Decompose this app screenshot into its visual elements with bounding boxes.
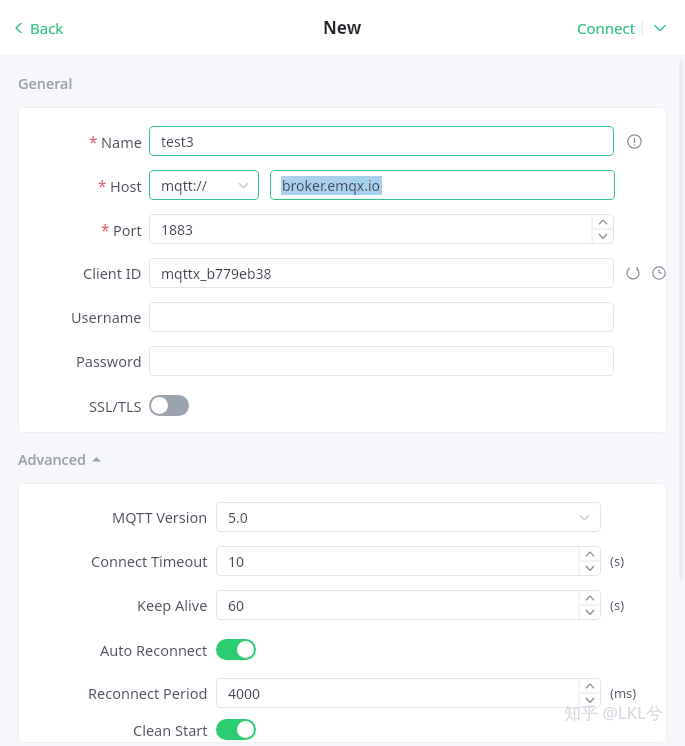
button[interactable]: SSL/TLS <box>149 395 189 416</box>
staticText: (ms) <box>610 684 637 702</box>
staticText: * <box>89 131 98 152</box>
staticText: Host <box>110 176 142 196</box>
button[interactable]: Increase or decrease value <box>579 590 601 620</box>
staticText: mqttx_b779eb38 <box>161 264 272 283</box>
staticText: (s) <box>610 552 625 570</box>
staticText: Name <box>101 132 142 152</box>
button[interactable]: mqtt:// <box>149 170 259 200</box>
button[interactable]: More options <box>643 11 677 45</box>
button[interactable] <box>149 302 614 332</box>
button[interactable]: Client ID history <box>650 264 667 282</box>
button[interactable]: test3 <box>149 126 614 156</box>
button[interactable]: Regenerate client ID <box>624 264 642 282</box>
staticText: Keep Alive <box>137 595 208 615</box>
staticText: * <box>98 175 107 196</box>
button[interactable] <box>149 346 614 376</box>
button[interactable]: 5.0 <box>216 502 601 532</box>
staticText: Reconnect Period <box>88 683 208 703</box>
staticText: MQTT Version <box>112 507 208 527</box>
button[interactable]: mqttx_b779eb38 <box>149 258 614 288</box>
button[interactable]: 4000 <box>216 678 601 708</box>
button[interactable]: 60 <box>216 590 601 620</box>
staticText: 10 <box>228 552 245 571</box>
staticText: (s) <box>610 596 625 614</box>
staticText: 60 <box>228 596 245 615</box>
staticText: test3 <box>161 132 194 151</box>
button[interactable]: Advanced <box>18 449 101 469</box>
button[interactable]: Increase or decrease value <box>592 214 614 244</box>
staticText: 1883 <box>161 220 194 239</box>
button[interactable]: Increase or decrease value <box>579 546 601 576</box>
staticText: General <box>18 73 73 93</box>
button[interactable]: Connect <box>571 12 642 44</box>
button[interactable]: Increase or decrease value <box>579 678 601 708</box>
button[interactable]: Back <box>14 18 64 38</box>
staticText: Username <box>71 307 142 327</box>
button[interactable]: Name info <box>625 132 643 150</box>
button[interactable]: Clean Start <box>216 719 256 740</box>
button[interactable]: Auto Reconnect <box>216 639 256 660</box>
staticText: 4000 <box>228 684 261 703</box>
button[interactable]: broker.emqx.io <box>270 170 615 200</box>
staticText: Auto Reconnect <box>100 640 208 660</box>
staticText: Back <box>30 18 64 38</box>
staticText: Password <box>76 351 142 371</box>
staticText: SSL/TLS <box>89 396 142 416</box>
staticText: Advanced <box>18 449 86 469</box>
staticText: Clean Start <box>133 720 208 740</box>
staticText: * <box>101 219 110 240</box>
staticText: Connect Timeout <box>91 551 208 571</box>
staticText: mqtt:// <box>161 176 207 195</box>
staticText: 5.0 <box>228 508 248 527</box>
staticText: Connect <box>577 18 636 38</box>
staticText: 知乎 @LKL兮 <box>563 701 663 724</box>
staticText: broker.emqx.io <box>282 176 381 195</box>
button[interactable]: 10 <box>216 546 601 576</box>
button[interactable]: 1883 <box>149 214 614 244</box>
staticText: Port <box>113 220 142 240</box>
staticText: New <box>323 16 362 39</box>
staticText: Client ID <box>83 263 142 283</box>
